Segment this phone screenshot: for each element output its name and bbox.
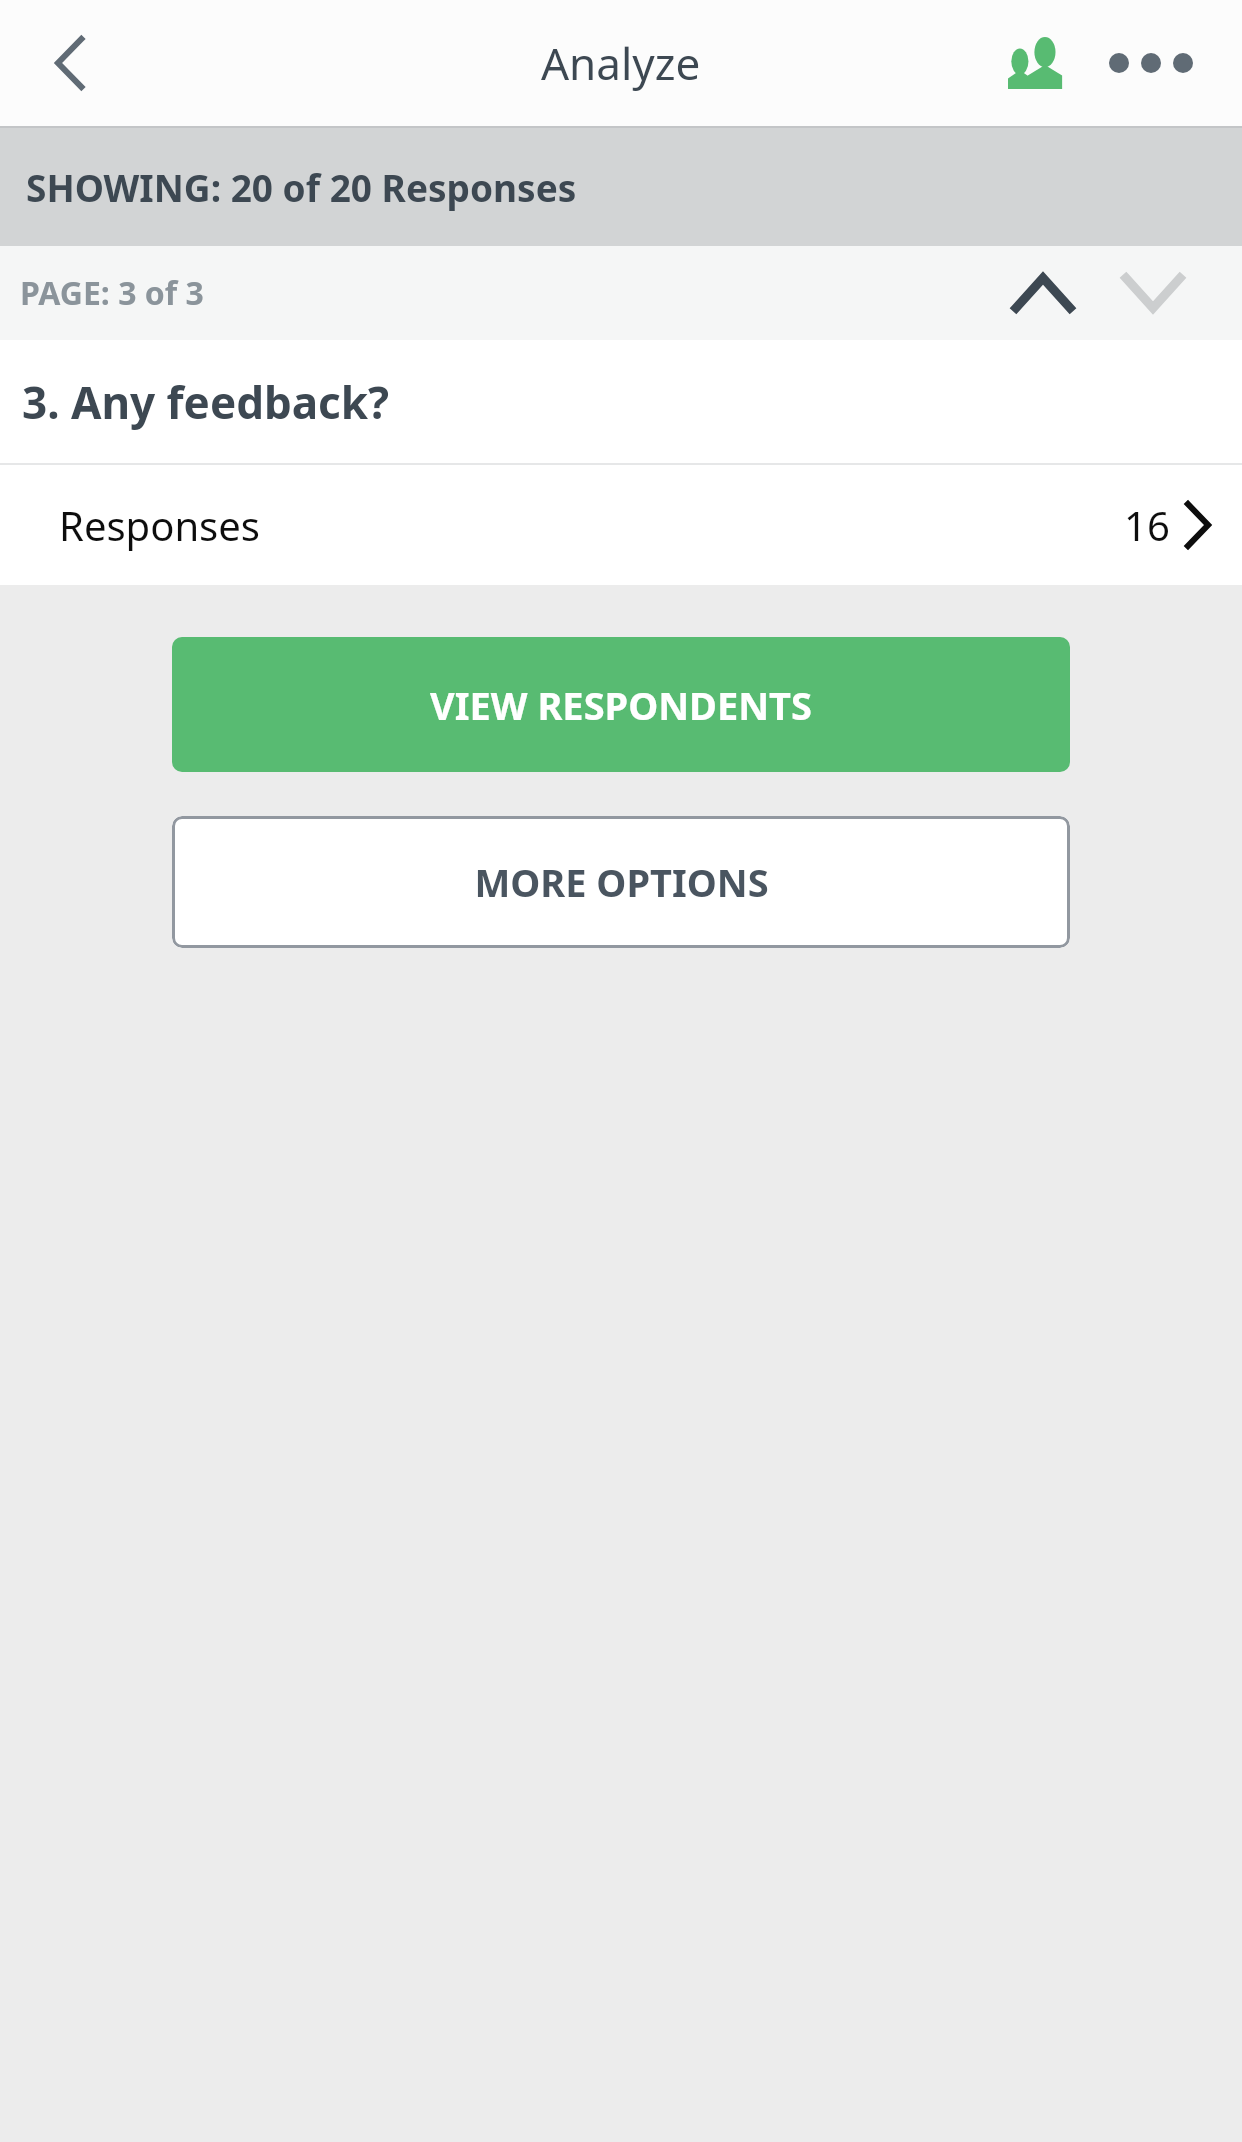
button[interactable]: More options <box>1096 8 1206 118</box>
staticText: 3. Any feedback? <box>22 372 390 432</box>
button[interactable]: Previous page <box>988 246 1098 340</box>
staticText: SHOWING: 20 of 20 Responses <box>26 162 577 212</box>
button[interactable]: MORE OPTIONS <box>172 816 1070 948</box>
staticText: MORE OPTIONS <box>474 856 769 908</box>
button[interactable]: Back <box>40 0 100 126</box>
button[interactable]: Respondents <box>986 8 1096 118</box>
button[interactable]: Next page <box>1098 246 1208 340</box>
staticText: Analyze <box>541 33 701 93</box>
staticText: PAGE: 3 of 3 <box>20 271 204 315</box>
button[interactable]: Responses <box>0 465 1242 585</box>
staticText: Responses <box>59 498 260 552</box>
button[interactable]: VIEW RESPONDENTS <box>172 637 1070 772</box>
staticText: 16 <box>1124 498 1170 552</box>
staticText: VIEW RESPONDENTS <box>430 679 812 731</box>
